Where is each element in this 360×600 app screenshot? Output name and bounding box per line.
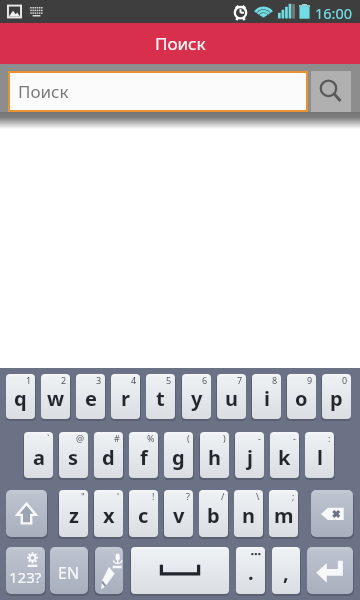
button[interactable]: k [270,432,299,478]
staticText: b [207,502,220,529]
staticText: w [47,385,65,412]
button[interactable]: d [94,432,123,478]
button[interactable]: Enter [307,547,353,594]
staticText: EN [58,562,80,584]
staticText: u [225,385,238,412]
button[interactable]: Handwriting [95,547,123,594]
staticText: , [283,559,289,586]
staticText: ' [117,490,120,502]
staticText: \ [256,490,260,502]
staticText: @ [76,432,85,444]
button[interactable]: r [111,374,140,419]
button[interactable]: EN [50,547,88,594]
staticText: ? [186,490,190,502]
staticText: 9 [307,374,313,386]
staticText: g [172,444,185,471]
staticText: o [295,385,308,412]
staticText: 6 [202,374,208,386]
staticText: 4 [131,374,137,386]
button[interactable]: t [146,374,175,419]
staticText: - [293,432,296,444]
staticText: d [102,444,115,471]
button[interactable]: s [59,432,88,478]
button[interactable]: , [272,547,300,594]
button[interactable]: l [305,432,334,478]
staticText: x [103,502,115,529]
button[interactable]: v [164,490,193,537]
button[interactable]: . [236,547,265,594]
button[interactable]: y [182,374,211,419]
button[interactable]: q [6,374,35,419]
staticText: z [69,502,79,529]
button[interactable]: x [94,490,123,537]
staticText: 123? [9,567,42,587]
button[interactable]: Space [131,547,229,594]
button[interactable]: Search [311,71,351,112]
staticText: p [330,385,343,412]
button[interactable]: j [235,432,264,478]
staticText: e [85,385,97,412]
staticText: 0 [342,374,348,386]
staticText: : [328,432,331,444]
staticText: q [14,385,27,412]
staticText: 2 [61,374,67,386]
staticText: v [173,502,185,529]
staticText: 16:00 [315,3,353,23]
staticText: ` [47,432,50,444]
button[interactable]: e [76,374,105,419]
staticText: - [258,432,261,444]
staticText: 1 [26,374,32,386]
button[interactable]: w [41,374,70,419]
staticText: a [33,444,45,471]
button[interactable]: m [269,490,298,537]
staticText: s [68,444,79,471]
staticText: 5 [166,374,172,386]
button[interactable]: i [252,374,281,419]
button[interactable]: u [217,374,246,419]
button[interactable]: o [287,374,316,419]
staticText: l [317,444,323,471]
button[interactable]: Поиск [10,73,306,110]
staticText: i [264,385,270,412]
staticText: f [140,444,148,471]
button[interactable]: c [129,490,158,537]
staticText: k [278,444,291,471]
staticText: j [247,444,253,471]
button[interactable]: z [59,490,88,537]
staticText: % [147,432,155,444]
button[interactable]: f [129,432,158,478]
staticText: n [242,502,255,529]
button[interactable]: g [164,432,193,478]
staticText: 3 [96,374,102,386]
staticText: ( [187,432,190,444]
staticText: m [274,502,294,529]
staticText: " [81,490,85,502]
staticText: 8 [272,374,278,386]
staticText: c [138,502,149,529]
staticText: y [191,385,203,412]
staticText: ; [292,490,295,502]
button[interactable]: a [24,432,53,478]
staticText: Поиск [155,32,206,55]
button[interactable]: b [199,490,228,537]
button[interactable]: h [200,432,229,478]
staticText: ! [152,490,155,502]
button[interactable]: Shift [6,490,47,537]
staticText: t [156,385,165,412]
button[interactable]: Backspace [311,490,353,537]
staticText: # [114,432,120,444]
button[interactable]: Symbols [6,547,45,594]
staticText: ) [223,432,226,444]
staticText: r [121,385,130,412]
staticText: 7 [237,374,243,386]
button[interactable]: p [322,374,351,419]
staticText: h [208,444,221,471]
button[interactable]: n [234,490,263,537]
staticText: Поиск [18,80,69,103]
staticText: . [248,559,254,586]
staticText: / [221,490,225,502]
